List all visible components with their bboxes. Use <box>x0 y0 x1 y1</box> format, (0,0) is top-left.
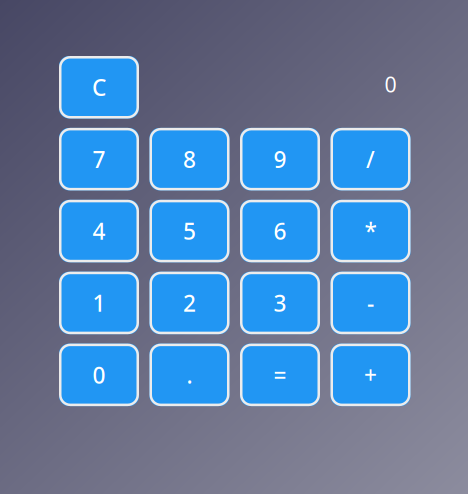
staticText: + <box>364 360 377 390</box>
button[interactable]: Add <box>330 344 410 406</box>
button[interactable]: Eight <box>149 128 229 190</box>
button[interactable]: Clear <box>59 56 139 118</box>
staticText: = <box>273 360 286 390</box>
button[interactable]: Five <box>149 200 229 262</box>
button[interactable]: Nine <box>240 128 320 190</box>
staticText: - <box>367 288 374 318</box>
staticText: 8 <box>183 144 196 174</box>
staticText: C <box>92 72 106 102</box>
button[interactable]: Seven <box>59 128 139 190</box>
button[interactable]: One <box>59 272 139 334</box>
staticText: 0 <box>384 70 396 98</box>
button[interactable]: Divide <box>330 128 410 190</box>
staticText: 7 <box>92 144 105 174</box>
staticText: 6 <box>273 216 286 246</box>
button[interactable]: Decimal point <box>149 344 229 406</box>
button[interactable]: Three <box>240 272 320 334</box>
staticText: 0 <box>92 360 105 390</box>
staticText: 2 <box>183 288 196 318</box>
button[interactable]: Two <box>149 272 229 334</box>
staticText: * <box>364 216 376 246</box>
staticText: 1 <box>92 288 105 318</box>
button[interactable]: Zero <box>59 344 139 406</box>
button[interactable]: Multiply <box>330 200 410 262</box>
staticText: . <box>186 360 192 390</box>
staticText: 9 <box>273 144 286 174</box>
staticText: / <box>366 144 375 174</box>
button[interactable]: Subtract <box>330 272 410 334</box>
staticText: 4 <box>92 216 105 246</box>
staticText: 5 <box>183 216 196 246</box>
staticText: 3 <box>273 288 286 318</box>
button[interactable]: Six <box>240 200 320 262</box>
button[interactable]: Equals <box>240 344 320 406</box>
button[interactable]: Four <box>59 200 139 262</box>
